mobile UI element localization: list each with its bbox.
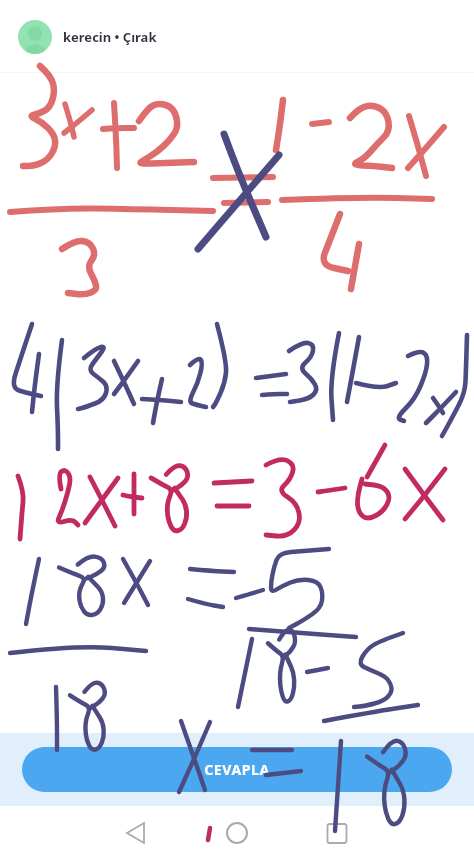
button[interactable]: Back	[118, 812, 160, 854]
button[interactable]: kerecin • Çırak	[0, 0, 474, 73]
button[interactable]: CEVAPLA	[22, 747, 452, 792]
staticText: kerecin • Çırak	[63, 28, 157, 46]
button[interactable]: Home	[216, 812, 258, 854]
staticText: CEVAPLA	[204, 760, 270, 779]
button[interactable]: Recent apps	[316, 813, 358, 855]
